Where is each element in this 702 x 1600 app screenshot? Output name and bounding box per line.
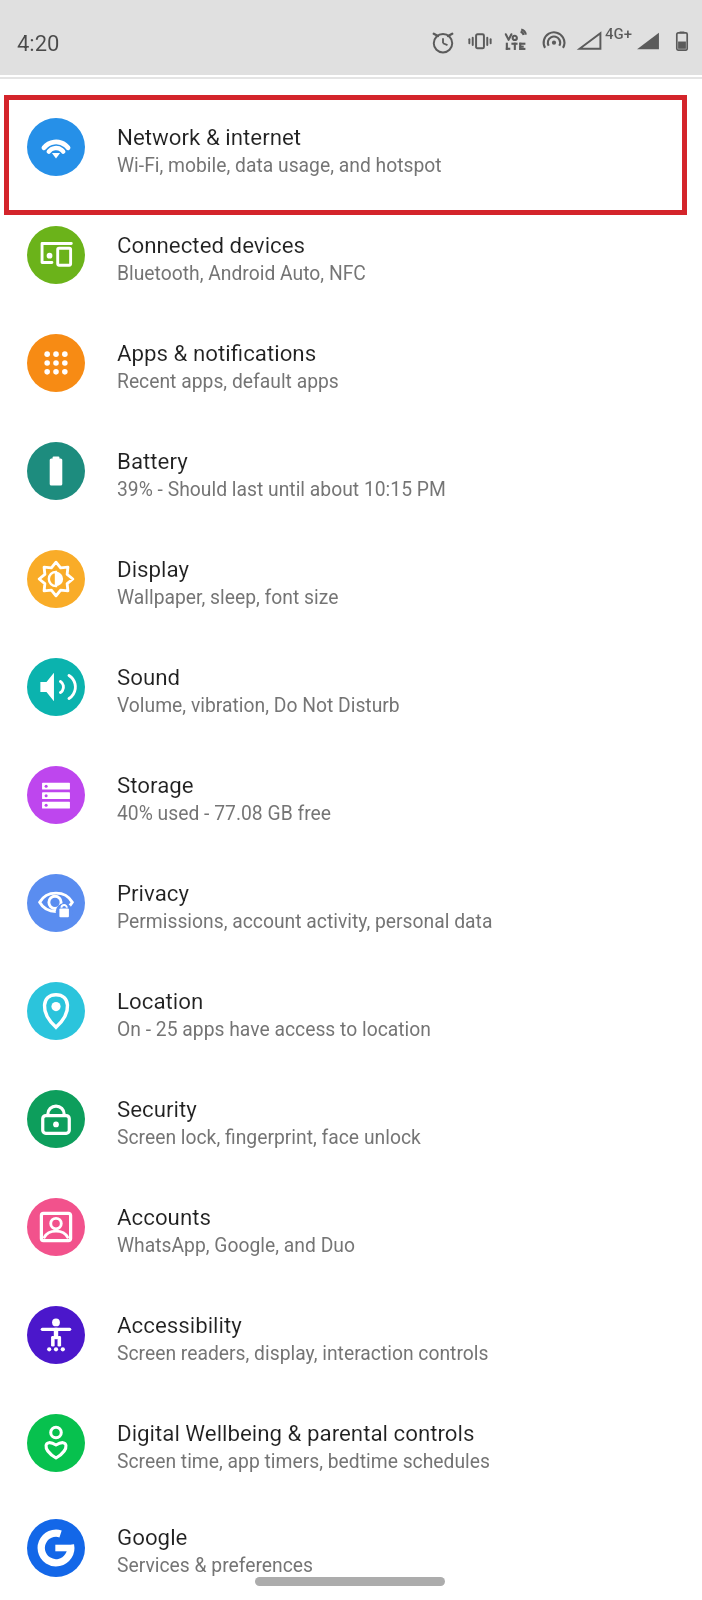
staticText: Services & preferences (117, 1554, 313, 1577)
staticText: Wi-Fi, mobile, data usage, and hotspot (117, 154, 442, 177)
staticText: Apps & notifications (117, 340, 317, 366)
other: Alarm set (429, 27, 457, 55)
staticText: On - 25 apps have access to location (117, 1018, 431, 1041)
button[interactable]: Accessibility (0, 1283, 702, 1391)
staticText: 39% - Should last until about 10:15 PM (117, 478, 446, 501)
other: Battery (669, 28, 695, 54)
staticText: Volume, vibration, Do Not Disturb (117, 694, 400, 717)
other: Vibrate mode (466, 27, 494, 55)
button[interactable]: Security (0, 1067, 702, 1175)
button[interactable]: Accounts (0, 1175, 702, 1283)
staticText: Bluetooth, Android Auto, NFC (117, 262, 366, 285)
button[interactable]: Storage (0, 743, 702, 851)
button[interactable]: Digital Wellbeing & parental controls (0, 1391, 702, 1499)
other: Hotspot (540, 27, 568, 55)
button[interactable]: Connected devices (0, 203, 702, 311)
staticText: 4G+ (605, 25, 633, 43)
staticText: 4:20 (17, 31, 60, 57)
staticText: WhatsApp, Google, and Duo (117, 1234, 355, 1257)
staticText: Digital Wellbeing & parental controls (117, 1420, 475, 1446)
staticText: Wallpaper, sleep, font size (117, 586, 339, 609)
staticText: Accessibility (117, 1312, 242, 1338)
staticText: Screen readers, display, interaction con… (117, 1342, 489, 1365)
button[interactable]: Battery (0, 419, 702, 527)
button[interactable]: Apps & notifications (0, 311, 702, 419)
staticText: Network & internet (117, 124, 302, 150)
button[interactable]: Sound (0, 635, 702, 743)
staticText: 40% used - 77.08 GB free (117, 802, 331, 825)
staticText: Privacy (117, 880, 190, 906)
staticText: Screen time, app timers, bedtime schedul… (117, 1450, 490, 1473)
other: Wi-Fi signal (635, 28, 661, 54)
button[interactable]: Google (0, 1499, 702, 1600)
staticText: Sound (117, 664, 181, 690)
staticText: Display (117, 556, 190, 582)
staticText: Screen lock, fingerprint, face unlock (117, 1126, 421, 1149)
button[interactable]: Location (0, 959, 702, 1067)
button[interactable]: Privacy (0, 851, 702, 959)
staticText: Battery (117, 448, 188, 474)
staticText: Accounts (117, 1204, 212, 1230)
staticText: Location (117, 988, 204, 1014)
staticText: Storage (117, 772, 194, 798)
button[interactable]: Network & internet (0, 95, 702, 203)
staticText: Recent apps, default apps (117, 370, 339, 393)
other: Mobile signal (577, 28, 603, 54)
staticText: Security (117, 1096, 197, 1122)
other: VoLTE (503, 27, 531, 55)
button[interactable]: Display (0, 527, 702, 635)
staticText: Permissions, account activity, personal … (117, 910, 493, 933)
staticText: Connected devices (117, 232, 306, 258)
staticText: Google (117, 1524, 188, 1550)
